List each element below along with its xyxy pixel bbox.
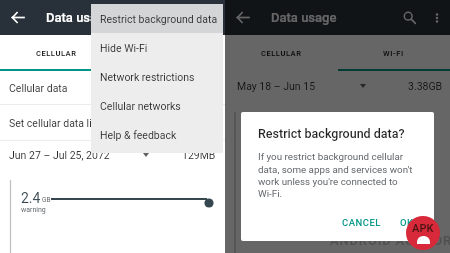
staticText: APK xyxy=(412,222,434,235)
button[interactable]: Navigate up xyxy=(5,0,30,35)
button[interactable]: Cellular data xyxy=(0,71,225,104)
staticText: If you restrict background cellular data… xyxy=(258,151,413,199)
staticText: Jun 27 – Jul 25, 2072 xyxy=(9,149,110,161)
button[interactable]: Search xyxy=(396,0,422,35)
staticText: 129MB xyxy=(182,149,216,161)
staticText: Data usage xyxy=(271,10,337,25)
staticText: 2.4 xyxy=(21,190,41,206)
button[interactable]: Set cellular data limit xyxy=(0,105,225,140)
staticText: Help & feedback xyxy=(100,129,177,141)
staticText: Network restrictions xyxy=(100,71,195,83)
button[interactable]: Restrict background data xyxy=(91,4,223,33)
button[interactable]: WI-FI xyxy=(337,35,450,71)
staticText: CELLULAR xyxy=(261,49,302,58)
staticText: Data usage xyxy=(46,10,112,25)
staticText: Set cellular data limit xyxy=(9,117,107,129)
staticText: ANDROID AUTHORITY xyxy=(330,233,450,248)
button[interactable]: CELLULAR xyxy=(0,35,112,71)
button[interactable]: WI-FI xyxy=(112,35,225,71)
button[interactable]: OK xyxy=(389,210,434,235)
staticText: Restrict background data xyxy=(100,13,218,25)
staticText: GB xyxy=(42,196,51,204)
button[interactable]: CELLULAR xyxy=(225,35,337,71)
staticText: CELLULAR xyxy=(36,49,77,58)
button[interactable]: Network restrictions xyxy=(91,62,223,91)
staticText: May 18 – Jun 15 xyxy=(237,80,316,92)
button[interactable]: Help & feedback xyxy=(91,120,223,149)
button[interactable]: More options xyxy=(424,0,450,35)
staticText: warning xyxy=(21,206,46,214)
staticText: CANCEL xyxy=(342,217,381,228)
staticText: Restrict background data? xyxy=(258,126,405,141)
button[interactable]: Hide Wi-Fi xyxy=(91,33,223,62)
button[interactable]: May 18 – Jun 15 xyxy=(225,71,450,100)
button[interactable]: CANCEL xyxy=(334,210,389,235)
button[interactable]: Navigate up xyxy=(230,0,255,35)
staticText: WI-FI xyxy=(383,49,404,58)
button[interactable]: Cellular networks xyxy=(91,91,223,120)
staticText: OK xyxy=(400,217,414,228)
staticText: Cellular data xyxy=(9,82,68,94)
button[interactable]: Jun 27 – Jul 25, 2072 xyxy=(0,141,225,168)
staticText: Hide Wi-Fi xyxy=(100,42,148,54)
staticText: 3.38GB xyxy=(408,80,443,92)
staticText: Cellular networks xyxy=(100,100,181,112)
